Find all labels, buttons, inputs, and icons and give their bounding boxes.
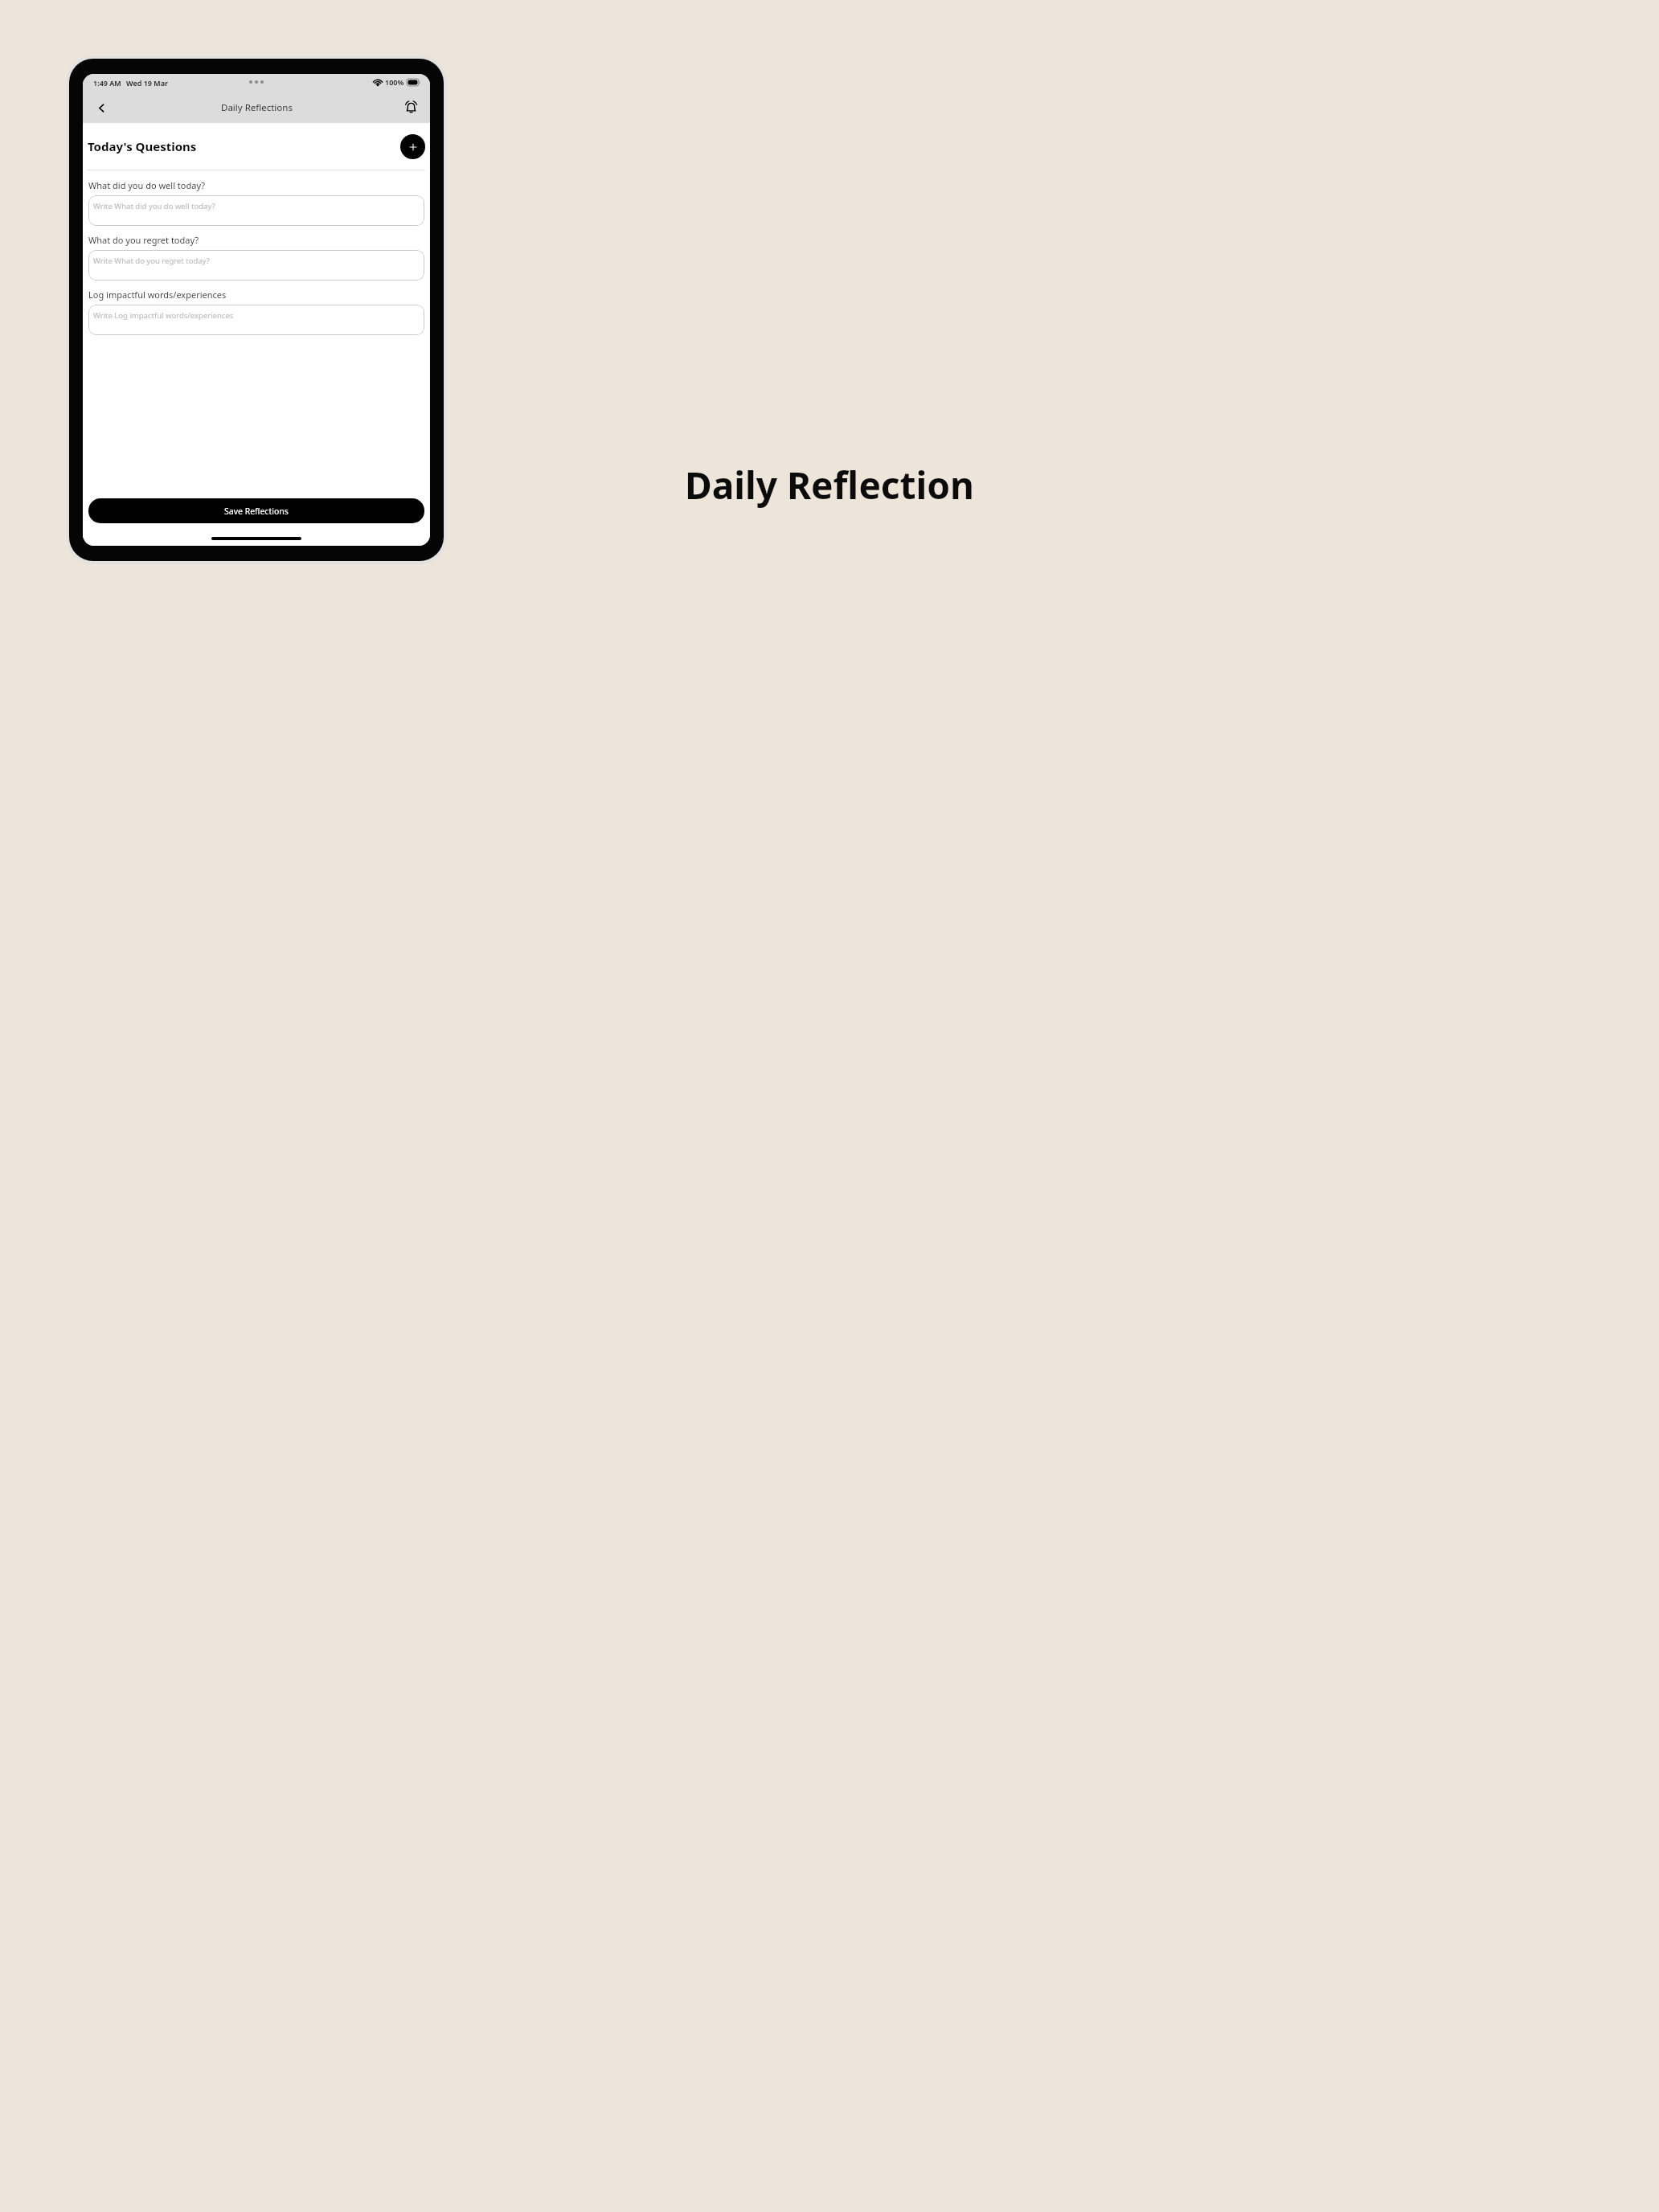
staticText: Today's Questions xyxy=(88,138,197,154)
staticText: Write What did you do well today? xyxy=(93,201,215,211)
button[interactable]: Notifications xyxy=(397,94,424,121)
staticText: Daily Reflections xyxy=(221,101,293,114)
button[interactable]: Write What did you do well today? xyxy=(88,195,424,226)
button[interactable]: Back xyxy=(88,94,115,121)
staticText: 1:49 AM xyxy=(93,78,121,88)
button[interactable]: Write What do you regret today? xyxy=(88,250,424,281)
staticText: Log impactful words/experiences xyxy=(88,289,227,301)
staticText: Write What do you regret today? xyxy=(93,256,210,266)
staticText: What did you do well today? xyxy=(88,179,206,191)
button[interactable]: Write Log impactful words/experiences xyxy=(88,305,424,335)
staticText: Wed 19 Mar xyxy=(126,78,168,88)
staticText: Write Log impactful words/experiences xyxy=(93,310,234,321)
staticText: Daily Reflection xyxy=(685,460,974,510)
staticText: What do you regret today? xyxy=(88,234,199,246)
button[interactable]: Save Reflections xyxy=(88,498,424,523)
button[interactable]: Add question xyxy=(400,134,425,159)
staticText: Save Reflections xyxy=(224,506,289,517)
staticText: 100% xyxy=(385,77,404,87)
